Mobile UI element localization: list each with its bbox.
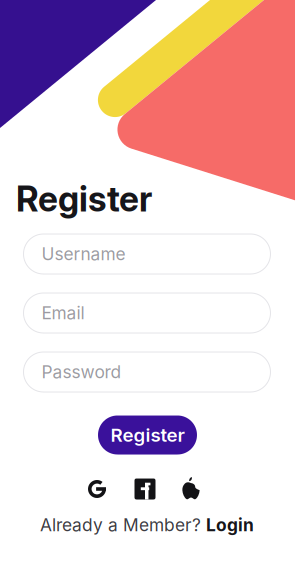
staticText: Login bbox=[206, 514, 254, 535]
staticText: Already a Member? bbox=[40, 514, 206, 535]
staticText: Email bbox=[41, 302, 84, 323]
staticText: Register bbox=[16, 178, 152, 220]
staticText: Username bbox=[41, 243, 125, 264]
button[interactable]: Sign in with Apple bbox=[181, 477, 200, 499]
button[interactable]: Sign in with Facebook bbox=[134, 478, 155, 499]
button[interactable]: Password bbox=[23, 352, 270, 392]
button[interactable]: Sign in with Google bbox=[88, 480, 106, 498]
button[interactable]: Email bbox=[23, 293, 270, 333]
button[interactable]: Register bbox=[98, 415, 197, 454]
button[interactable]: Login bbox=[206, 514, 254, 535]
button[interactable]: Username bbox=[23, 234, 270, 274]
staticText: Password bbox=[41, 361, 121, 382]
staticText: Register bbox=[110, 424, 184, 446]
